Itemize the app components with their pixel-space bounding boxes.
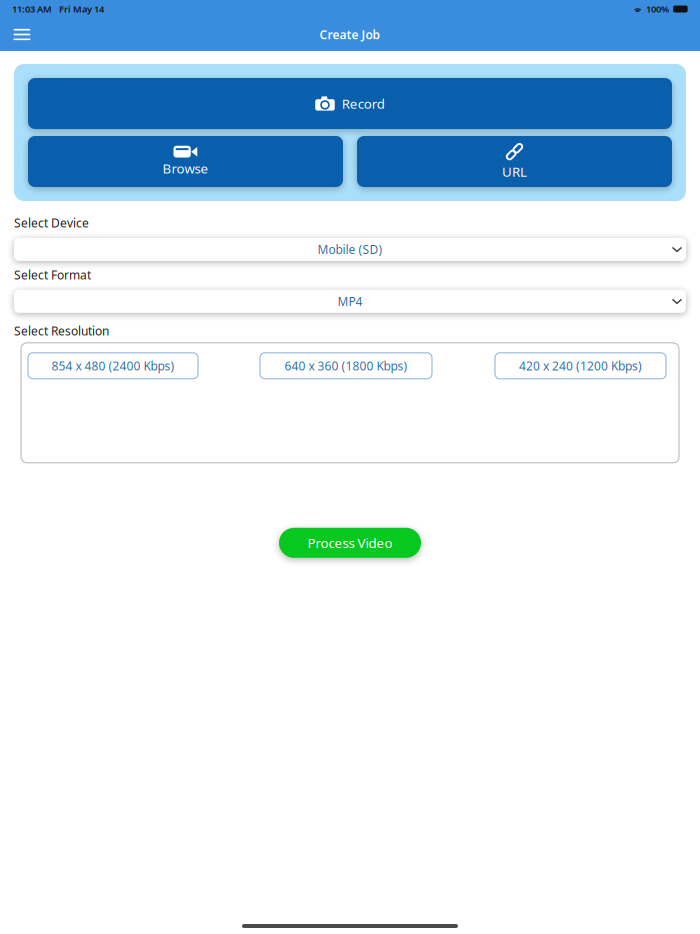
staticText: MP4 (337, 293, 362, 309)
button[interactable]: Record (28, 78, 672, 129)
button[interactable]: 854 x 480 (2400 Kbps) (28, 353, 198, 379)
button[interactable]: 640 x 360 (1800 Kbps) (260, 353, 432, 379)
staticText: 11:03 AM (12, 3, 52, 15)
staticText: Select Format (14, 267, 91, 283)
staticText: 100% (646, 3, 669, 15)
staticText: Mobile (SD) (317, 241, 382, 257)
button[interactable]: Menu (9, 24, 35, 44)
staticText: Select Device (14, 215, 89, 231)
button[interactable]: 420 x 240 (1200 Kbps) (495, 353, 666, 379)
button[interactable]: Process Video (279, 528, 421, 558)
button[interactable]: URL (357, 136, 672, 187)
staticText: Create Job (319, 26, 380, 42)
staticText: Select Resolution (14, 323, 109, 339)
staticText: URL (502, 163, 527, 180)
staticText: Process Video (307, 534, 392, 552)
button[interactable]: Mobile (SD) (14, 238, 686, 261)
button[interactable]: Browse (28, 136, 343, 187)
staticText: Record (342, 95, 385, 112)
staticText: 854 x 480 (2400 Kbps) (51, 358, 174, 374)
staticText: Browse (162, 159, 208, 177)
staticText: Fri May 14 (59, 3, 104, 15)
staticText: 420 x 240 (1200 Kbps) (519, 358, 642, 374)
button[interactable]: MP4 (14, 290, 686, 313)
staticText: 640 x 360 (1800 Kbps) (284, 358, 407, 374)
